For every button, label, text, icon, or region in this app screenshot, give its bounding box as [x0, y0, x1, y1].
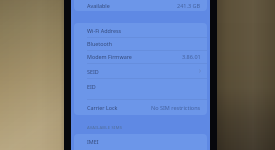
button[interactable]: Modem Firmware [74, 50, 207, 63]
button[interactable]: IMEI [74, 134, 207, 148]
other: Open [198, 69, 202, 73]
staticText: SEID [87, 68, 99, 75]
staticText: Modem Firmware [87, 53, 132, 60]
staticText: AVAILABLE SIMS [87, 125, 123, 131]
staticText: Carrier Lock [87, 104, 118, 111]
button[interactable]: SEID [74, 64, 207, 78]
button[interactable]: Bluetooth [74, 37, 207, 50]
staticText: Bluetooth [87, 40, 113, 47]
button[interactable]: Wi-Fi Address [74, 24, 207, 37]
staticText: IMEI [87, 138, 99, 145]
staticText: Available [87, 2, 110, 9]
staticText: No SIM restrictions [151, 104, 201, 111]
staticText: 3.86.01 [182, 53, 201, 60]
button[interactable]: Available [74, 0, 207, 11]
staticText: 241.3 GB [177, 2, 201, 9]
staticText: EID [87, 83, 96, 90]
staticText: Wi-Fi Address [87, 27, 122, 34]
button[interactable]: EID [74, 79, 207, 93]
button[interactable]: Carrier Lock [74, 100, 207, 114]
